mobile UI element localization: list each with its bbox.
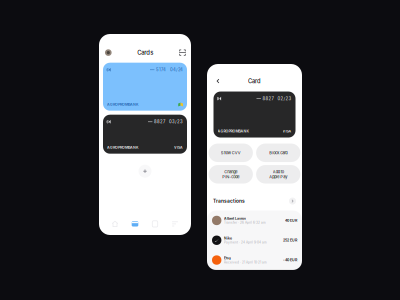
staticText: Apple Pay	[269, 174, 287, 179]
button[interactable]: Scan code	[179, 49, 186, 56]
button[interactable]: 8827	[103, 115, 187, 154]
button[interactable]: Etsy	[207, 250, 302, 270]
button[interactable]: 8827	[213, 91, 295, 137]
button[interactable]: Cards	[125, 221, 145, 227]
button[interactable]: Transactions	[145, 221, 165, 227]
button[interactable]: Block card	[256, 144, 300, 162]
staticText: Change	[224, 169, 237, 174]
staticText: PIN-code	[222, 174, 239, 179]
staticText: AGROPROMBANK	[107, 102, 139, 106]
staticText: VISA	[174, 145, 183, 149]
staticText: 5174	[156, 67, 166, 72]
staticText: Payment · 24 April 9:04 am	[224, 241, 267, 244]
staticText: Etsy	[224, 256, 231, 260]
button[interactable]: Add to	[256, 165, 300, 184]
staticText: VISA	[282, 129, 291, 133]
staticText: Block card	[269, 150, 287, 155]
button[interactable]: Profile	[105, 49, 112, 56]
staticText: Albert Lavrov	[224, 216, 246, 220]
button[interactable]: 5174	[103, 63, 187, 111]
button[interactable]: Statistics	[165, 221, 185, 227]
staticText: AGROPROMBANK	[107, 145, 139, 149]
staticText: Cards	[137, 49, 153, 56]
staticText: 252 EUR	[283, 238, 297, 242]
staticText: Card	[248, 78, 261, 84]
staticText: 8827	[154, 119, 165, 124]
button[interactable]: Back	[214, 77, 222, 85]
button[interactable]: Add card	[138, 165, 151, 178]
staticText: -40 EUR	[283, 258, 297, 262]
button[interactable]: Show CVV	[209, 144, 253, 162]
staticText: Nike	[224, 236, 232, 240]
staticText: Received · 21 April 10:21 am	[224, 260, 267, 264]
staticText: 03/23	[169, 119, 183, 124]
button[interactable]: Home	[105, 221, 125, 227]
staticText: Show CVV	[221, 150, 241, 155]
staticText: 40 EUR	[285, 218, 297, 223]
staticText: 8827	[262, 96, 273, 101]
staticText: 04/24	[170, 67, 183, 72]
staticText: Transactions	[213, 198, 245, 204]
button[interactable]: Albert Lavrov	[207, 211, 302, 230]
button[interactable]: Transactions	[207, 184, 302, 211]
staticText: Add to	[273, 169, 284, 174]
button[interactable]: Nike	[207, 230, 302, 250]
staticText: AGROPROMBANK	[217, 129, 249, 133]
staticText: Transfer · 26 April 6:32 am	[224, 221, 266, 224]
button[interactable]: Change	[209, 165, 253, 184]
staticText: 02/23	[277, 96, 291, 101]
